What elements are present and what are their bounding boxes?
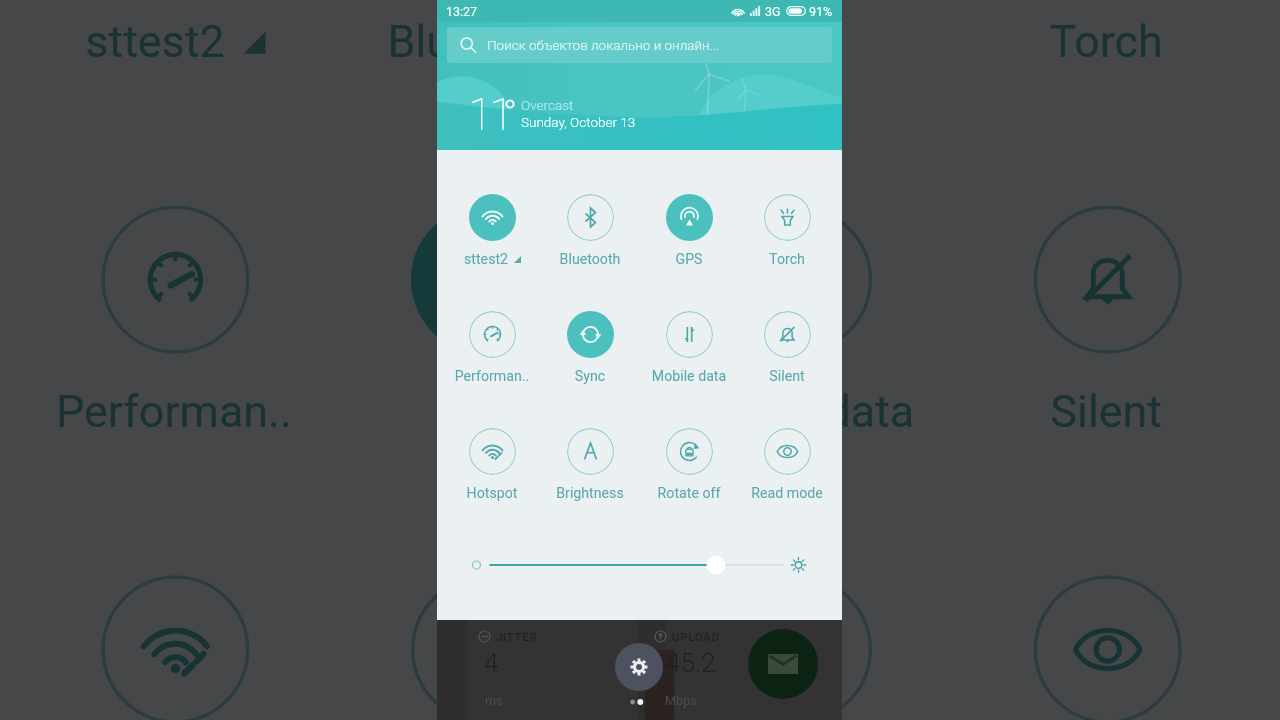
staticText: Torch [742,251,832,268]
staticText: 4 [484,648,499,678]
button[interactable]: Rotate off [644,428,734,502]
staticText: 91% [809,4,833,19]
staticText: GPS [644,251,734,268]
staticText: 11 [468,89,512,141]
button[interactable]: sttest2 [32,0,316,70]
staticText: Mobile data [644,368,734,385]
button[interactable]: Bluetooth [341,0,626,70]
button[interactable]: Read mode [742,428,832,502]
button[interactable]: Mobile data [654,205,939,439]
staticText: Silent [964,386,1248,439]
staticText: Overcast [521,97,574,113]
staticText: 13:27 [446,4,478,19]
staticText: sttest2 [85,16,227,69]
button[interactable]: Settings [615,643,663,691]
staticText: GPS [654,16,939,69]
button[interactable]: GPS [654,0,939,70]
button[interactable]: Sync [545,311,635,385]
button[interactable]: sttest2 [447,194,537,268]
staticText: Mobile data [654,386,939,439]
button[interactable]: Brightness [545,428,635,502]
button[interactable]: GPS [644,194,734,268]
staticText: Read mode [742,485,832,502]
staticText: JITTER [496,630,538,643]
button[interactable]: Rotate off [654,575,939,720]
button[interactable]: Поиск объектов локально и онлайн... [447,27,832,63]
staticText: Sync [545,368,635,385]
button[interactable]: Bluetooth [545,194,635,268]
staticText: Bluetooth [341,16,626,69]
staticText: 45.2 [666,648,716,678]
staticText: Rotate off [644,485,734,502]
staticText: sttest2 [464,251,509,268]
button[interactable]: Torch [964,0,1248,70]
button[interactable]: Silent [742,311,832,385]
staticText: Torch [964,16,1248,69]
button[interactable]: Read mode [964,575,1248,720]
staticText: Поиск объектов локально и онлайн... [487,37,720,53]
staticText: Mbps [665,693,697,708]
button[interactable]: Brightness [341,575,626,720]
staticText: Hotspot [447,485,537,502]
staticText: Silent [742,368,832,385]
button[interactable]: Performan.. [447,311,537,385]
staticText: Brightness [545,485,635,502]
button[interactable]: Mobile data [644,311,734,385]
button[interactable]: Torch [742,194,832,268]
button[interactable]: Sync [341,205,626,439]
staticText: Sync [341,386,626,439]
staticText: ms [485,693,503,708]
staticText: Bluetooth [545,251,635,268]
button[interactable]: Mail [748,629,818,699]
button[interactable]: Performan.. [32,205,316,439]
button[interactable]: Silent [964,205,1248,439]
staticText: 3G [765,4,781,19]
staticText: Performan.. [32,386,316,439]
staticText: Performan.. [447,368,537,385]
button[interactable]: Hotspot [32,575,316,720]
staticText: UPLOAD [672,630,720,643]
button[interactable]: Hotspot [447,428,537,502]
staticText: Sunday, October 13 [521,114,636,130]
